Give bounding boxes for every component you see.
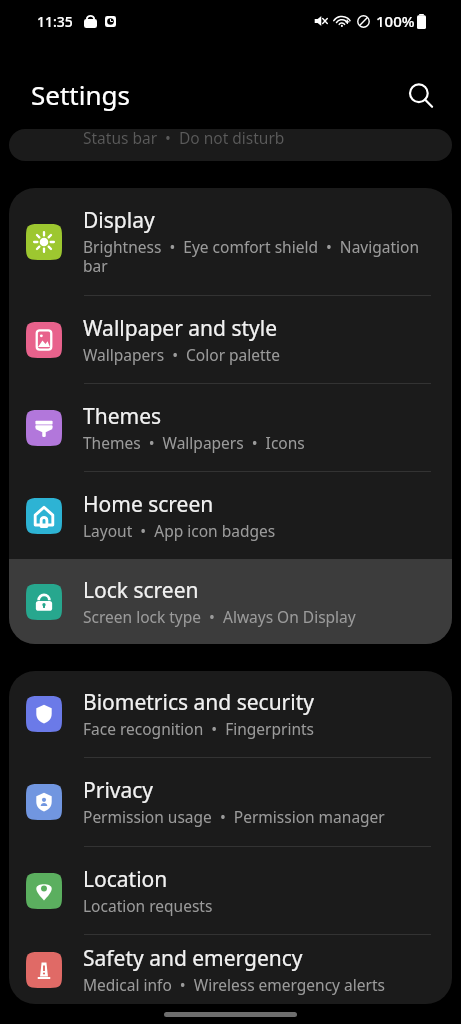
button[interactable]: Biometrics and security — [9, 671, 452, 757]
button[interactable]: Location — [9, 847, 452, 934]
staticText: Lock screen — [83, 576, 199, 605]
button[interactable]: Wallpaper and style — [9, 296, 452, 383]
staticText: Home screen — [83, 490, 214, 519]
staticText: Themes • Wallpapers • Icons — [83, 432, 305, 453]
staticText: Biometrics and security — [83, 688, 314, 717]
staticText: Location — [83, 865, 168, 894]
button[interactable]: Search — [398, 72, 444, 118]
staticText: Face recognition • Fingerprints — [83, 718, 315, 739]
staticText: Brightness • Eye comfort shield • Naviga… — [83, 236, 431, 277]
staticText: Medical info • Wireless emergency alerts — [83, 974, 385, 995]
staticText: Wallpaper and style — [83, 314, 278, 343]
staticText: Status bar • Do not disturb — [83, 129, 285, 148]
staticText: Themes — [83, 402, 162, 431]
staticText: 11:35 — [37, 12, 73, 31]
button[interactable]: Lock screen — [9, 559, 452, 644]
staticText: Display — [83, 206, 155, 235]
staticText: Wallpapers • Color palette — [83, 344, 280, 365]
button[interactable]: Display — [9, 188, 452, 295]
staticText: Layout • App icon badges — [83, 520, 276, 541]
staticText: Safety and emergency — [83, 944, 303, 973]
staticText: Settings — [31, 77, 130, 112]
staticText: Permission usage • Permission manager — [83, 806, 385, 827]
button[interactable]: Privacy — [9, 758, 452, 846]
staticText: 100% — [376, 11, 415, 31]
button[interactable]: Themes — [9, 384, 452, 471]
button[interactable]: Home screen — [9, 472, 452, 559]
staticText: Screen lock type • Always On Display — [83, 606, 356, 627]
staticText: Privacy — [83, 776, 154, 805]
staticText: Location requests — [83, 895, 213, 916]
button[interactable]: Safety and emergency — [9, 935, 452, 1004]
